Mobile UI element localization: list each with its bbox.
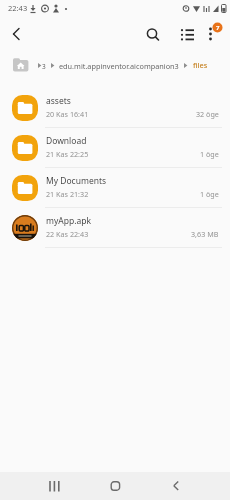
staticText: 22 Kas 22:43 <box>46 229 89 239</box>
button[interactable] <box>42 474 66 498</box>
button[interactable] <box>141 23 165 47</box>
staticText: assets <box>46 95 71 107</box>
staticText: 32 öge <box>196 109 219 119</box>
staticText: 3 <box>42 62 46 71</box>
staticText: 22:43 <box>8 3 28 13</box>
button[interactable]: files <box>192 56 207 76</box>
button[interactable]: assets <box>0 88 230 128</box>
button[interactable]: myApp.apk <box>0 208 230 248</box>
staticText: 1 öge <box>200 149 219 159</box>
staticText: 7 <box>216 24 220 32</box>
button[interactable] <box>175 23 199 47</box>
staticText: Download <box>46 135 87 147</box>
staticText: My Documents <box>46 175 107 187</box>
button[interactable]: My Documents <box>0 168 230 208</box>
staticText: 3,63 MB <box>191 229 219 239</box>
staticText: edu.mit.appinventor.aicompanion3 <box>59 61 179 71</box>
staticText: 1 öge <box>200 189 219 199</box>
button[interactable] <box>10 56 32 78</box>
staticText: 20 Kas 16:41 <box>46 109 89 119</box>
button[interactable] <box>4 22 28 46</box>
staticText: 21 Kas 21:32 <box>46 189 89 199</box>
staticText: 21 Kas 22:25 <box>46 149 89 159</box>
button[interactable] <box>103 474 127 498</box>
button[interactable]: 7 <box>199 20 225 46</box>
button[interactable] <box>164 474 188 498</box>
staticText: files <box>193 60 208 70</box>
staticText: myApp.apk <box>46 215 91 227</box>
button[interactable]: Download <box>0 128 230 168</box>
